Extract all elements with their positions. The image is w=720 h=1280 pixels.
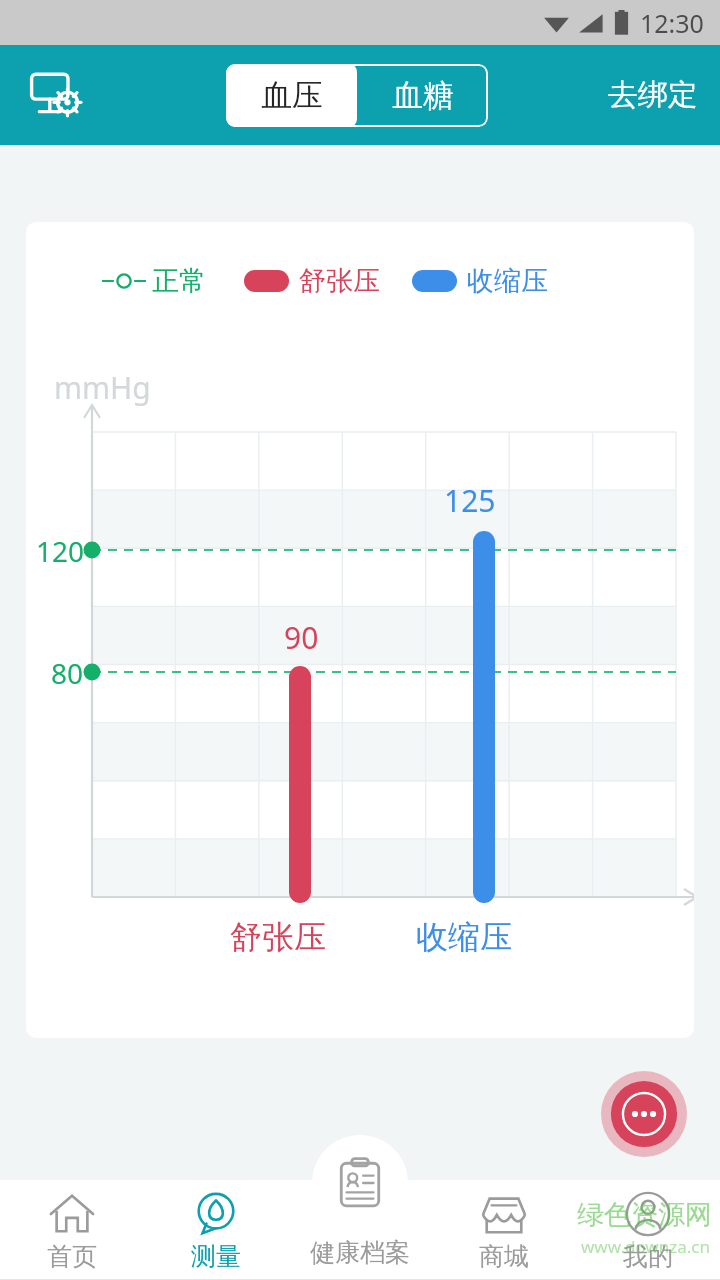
staticText: 我的 [623, 1241, 673, 1272]
staticText: 90 [284, 617, 319, 658]
staticText: 血糖 [392, 76, 454, 115]
button[interactable]: 测量 [144, 1173, 288, 1280]
staticText: 舒张压 [230, 917, 326, 957]
staticText: mmHg [54, 367, 151, 408]
staticText: 舒张压 [299, 264, 380, 298]
staticText: 12:30 [640, 6, 704, 40]
staticText: 收缩压 [416, 917, 512, 957]
staticText: 健康档案 [310, 1237, 410, 1268]
button[interactable]: 首页 [0, 1173, 144, 1280]
button[interactable]: 健康档案 [288, 1173, 432, 1280]
button[interactable]: 血糖 [357, 64, 488, 127]
staticText: 收缩压 [467, 264, 548, 298]
button[interactable]: Device settings [20, 60, 90, 130]
staticText: 测量 [191, 1241, 241, 1272]
staticText: 商城 [479, 1241, 529, 1272]
button[interactable]: 血压 [226, 64, 357, 127]
staticText: 绿色资源网 [577, 1198, 712, 1232]
staticText: 去绑定 [608, 76, 698, 114]
staticText: 血压 [261, 76, 323, 115]
button[interactable]: 商城 [432, 1173, 576, 1280]
button[interactable]: More actions [601, 1071, 687, 1157]
staticText: 125 [444, 480, 496, 521]
staticText: 首页 [47, 1241, 97, 1272]
button[interactable]: 去绑定 [600, 66, 706, 124]
staticText: 120 [36, 532, 85, 570]
staticText: 80 [51, 654, 84, 692]
button[interactable]: 我的 [576, 1173, 720, 1280]
staticText: 正常 [152, 264, 206, 298]
staticText: www.downza.cn [581, 1235, 710, 1258]
